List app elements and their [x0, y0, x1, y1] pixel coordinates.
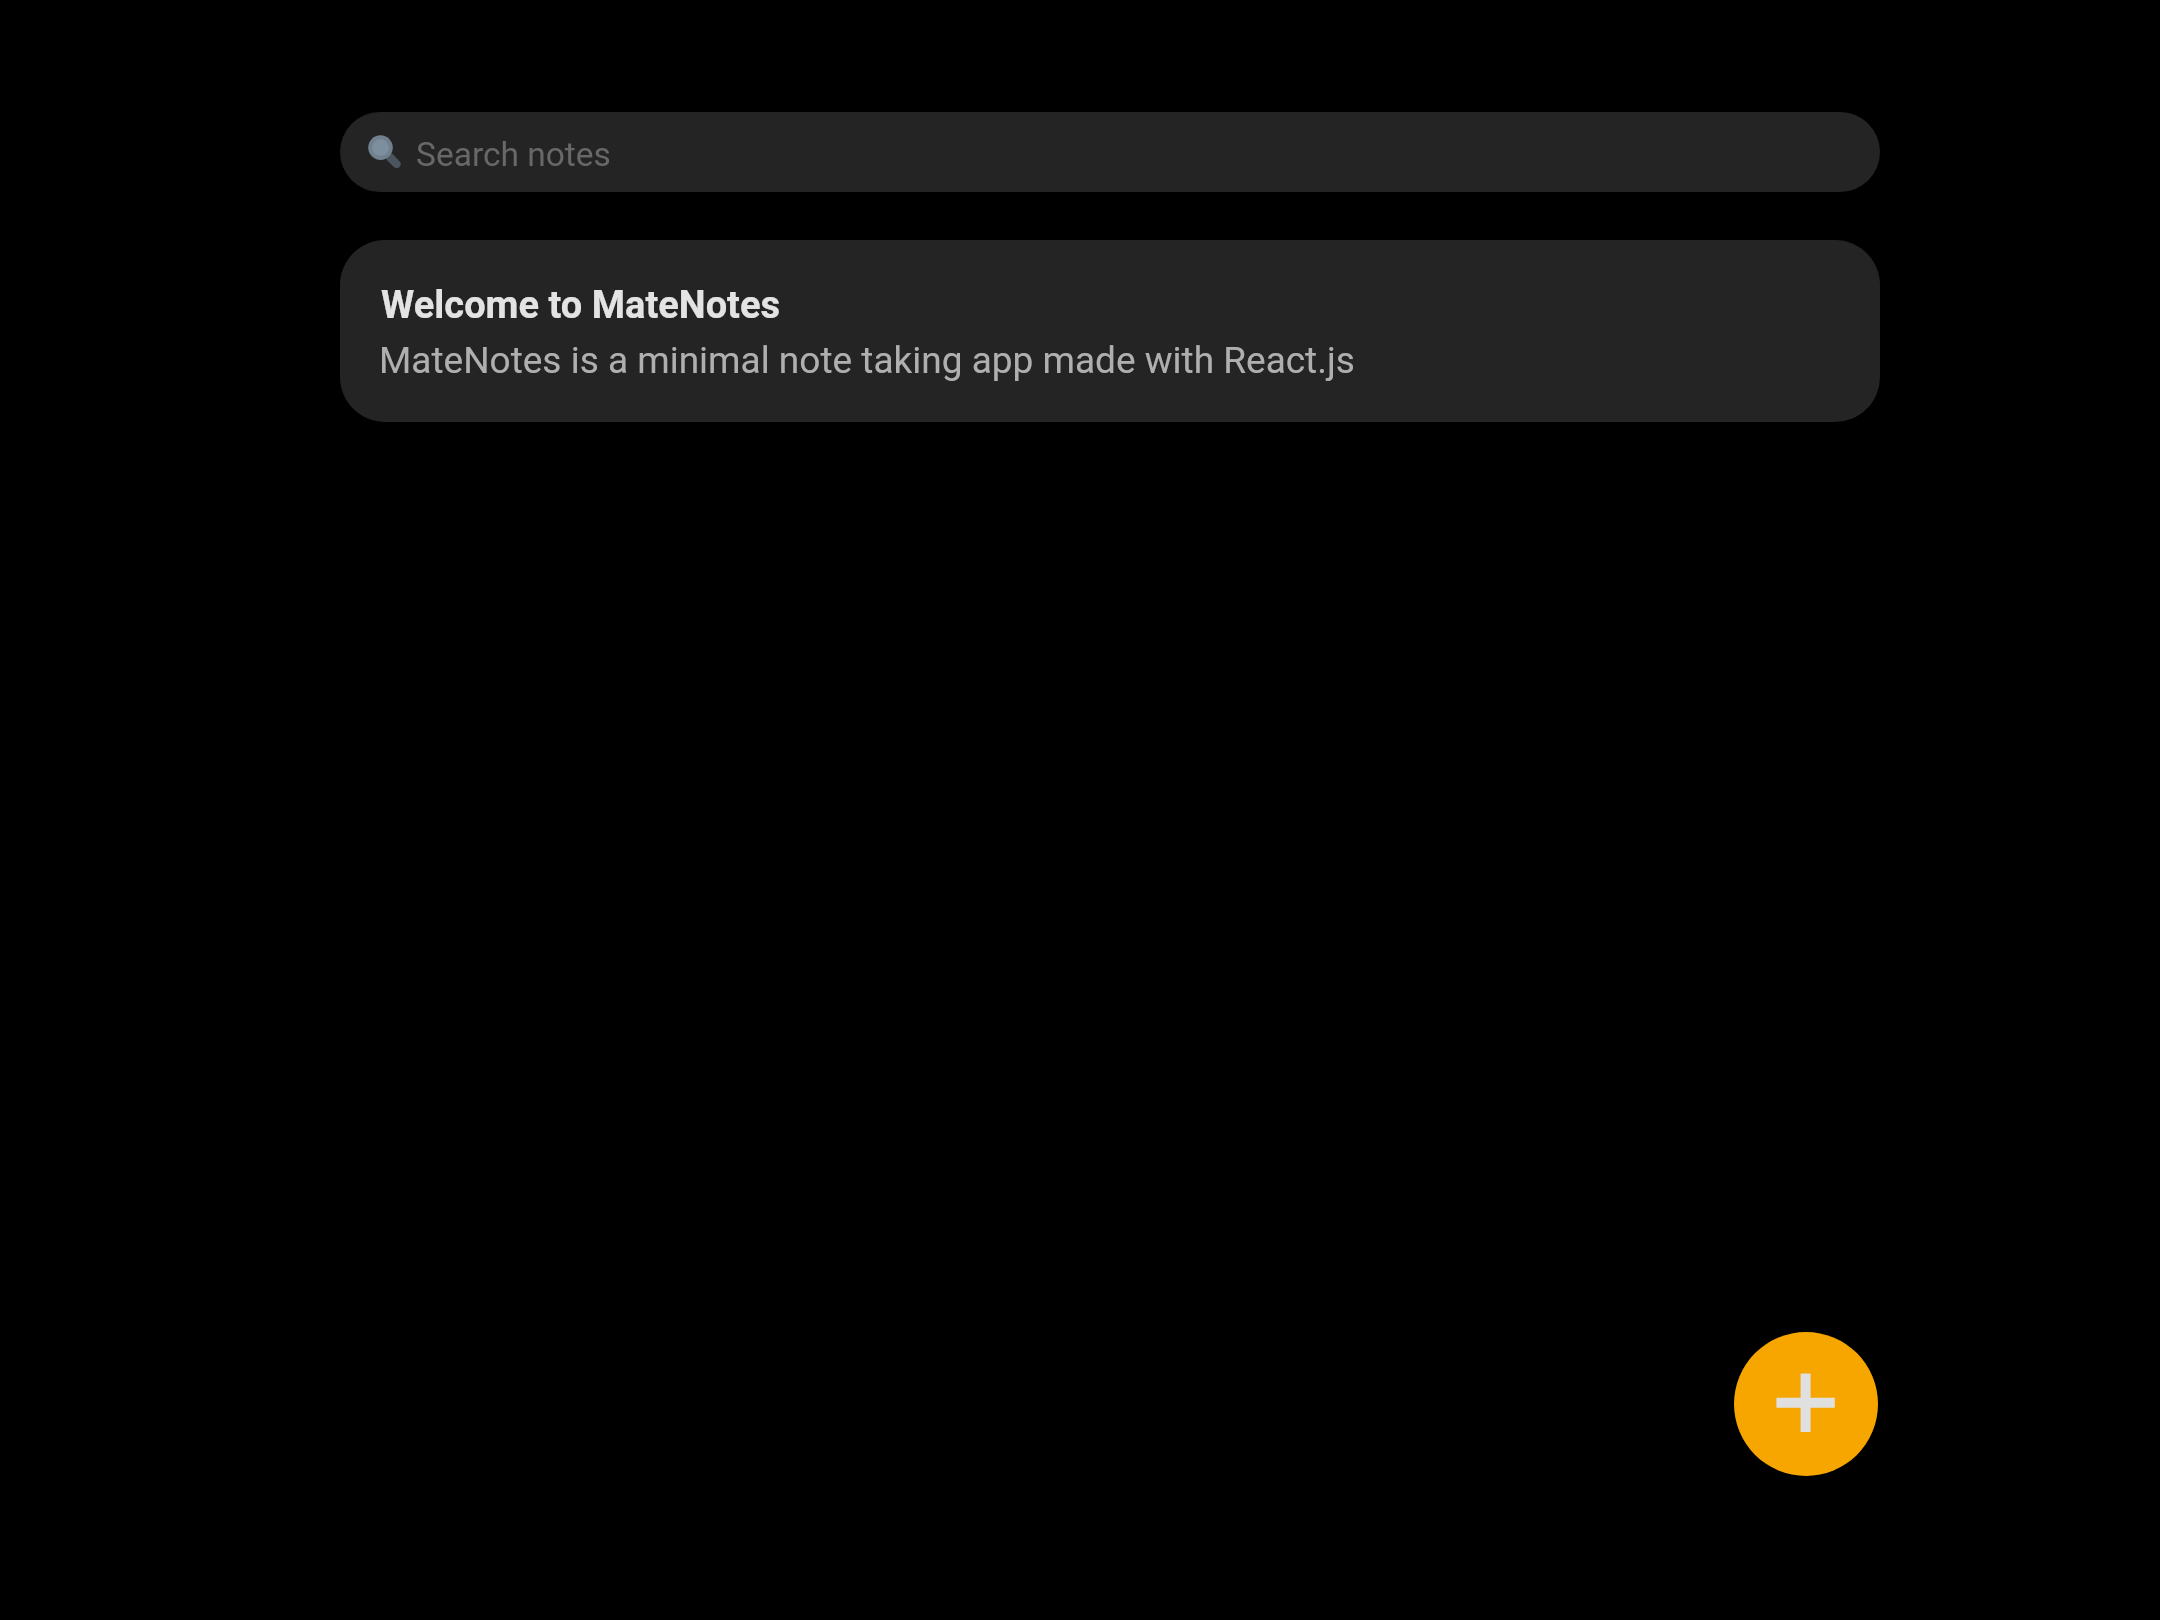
staticText: MateNotes is a minimal note taking app m…	[379, 339, 1355, 382]
button[interactable]: Search notes	[340, 112, 1880, 192]
button[interactable]: Add note	[1734, 1332, 1878, 1476]
staticText: Welcome to MateNotes	[381, 283, 781, 328]
button[interactable]: Welcome to MateNotes	[340, 240, 1880, 422]
staticText: Search notes	[416, 135, 611, 174]
